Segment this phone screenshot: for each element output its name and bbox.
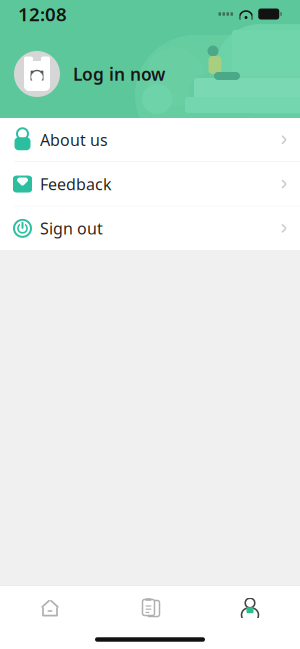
button[interactable]: Feedback xyxy=(0,162,300,207)
staticText: Log in now xyxy=(73,62,165,85)
staticText: Feedback xyxy=(40,173,112,195)
button[interactable]: Profile xyxy=(200,586,300,630)
button[interactable]: Orders xyxy=(100,586,200,630)
button[interactable]: Home xyxy=(0,586,100,630)
staticText: Sign out xyxy=(40,218,103,239)
staticText: 12:08 xyxy=(18,2,67,26)
button[interactable]: Sign out xyxy=(0,207,300,250)
button[interactable]: About us xyxy=(0,118,300,162)
staticText: About us xyxy=(40,129,108,150)
button[interactable]: Log in now xyxy=(0,48,300,100)
